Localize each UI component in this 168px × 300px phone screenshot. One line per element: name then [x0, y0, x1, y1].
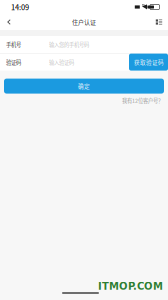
staticText: 14:09 — [11, 2, 29, 12]
staticText: 手机号 — [6, 41, 21, 48]
staticText: 输入您的手机号码 — [49, 41, 89, 48]
staticText: ITMOP.COM — [98, 280, 163, 292]
staticText: 住户认证 — [72, 18, 96, 26]
button[interactable]: 返回 — [1, 14, 17, 30]
staticText: 验证码 — [6, 58, 21, 66]
staticText: 确定 — [78, 82, 90, 90]
staticText: 输入验证码 — [49, 58, 74, 66]
button[interactable]: 获取验证码 — [129, 54, 168, 71]
button[interactable]: 我有12位客户号？ — [122, 97, 163, 104]
button[interactable]: 认证记录 — [151, 14, 167, 30]
staticText: 我有12位客户号？ — [122, 97, 163, 104]
button[interactable]: 确定 — [4, 79, 164, 94]
staticText: 获取验证码 — [134, 58, 164, 66]
